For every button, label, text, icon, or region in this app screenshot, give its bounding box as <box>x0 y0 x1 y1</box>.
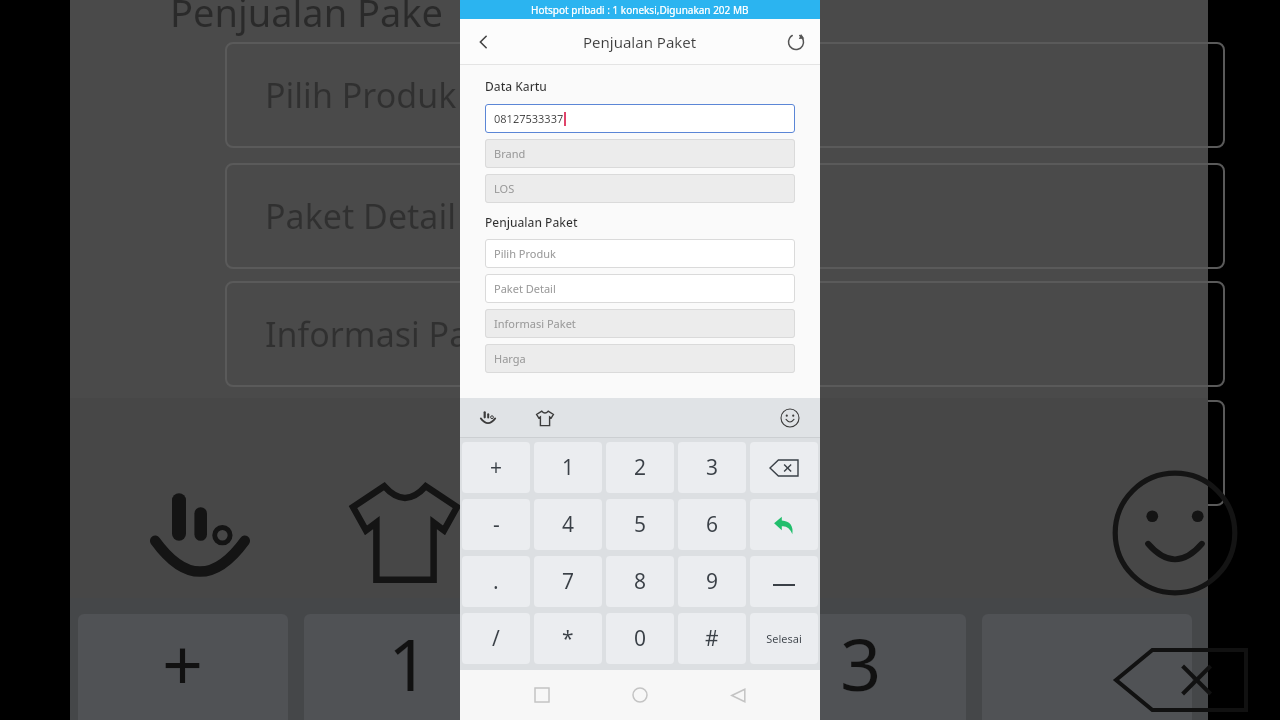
staticText: Informasi Paket <box>494 316 576 331</box>
staticText: 4 <box>562 510 575 539</box>
staticText: 0 <box>634 624 647 653</box>
staticText: 3 <box>840 614 882 712</box>
staticText: 9 <box>706 567 719 596</box>
staticText: . <box>493 567 499 596</box>
button[interactable]: * <box>534 613 602 664</box>
staticText: Brand <box>494 146 526 161</box>
button[interactable]: 8 <box>606 556 674 607</box>
staticText: 08127533337 <box>494 111 564 126</box>
button[interactable]: 3 <box>678 442 746 493</box>
staticText: Informasi Paket <box>265 311 518 357</box>
button[interactable]: LOS <box>485 174 795 203</box>
button[interactable]: Brand <box>485 139 795 168</box>
button[interactable]: Emoji <box>770 398 810 438</box>
staticText: * <box>562 624 574 653</box>
button[interactable]: 1 <box>534 442 602 493</box>
staticText: Pilih Produk <box>265 72 457 118</box>
button[interactable]: Keyboard settings <box>468 398 508 438</box>
staticText: / <box>492 624 500 653</box>
button[interactable]: Backspace <box>750 442 818 493</box>
button[interactable]: 5 <box>606 499 674 550</box>
staticText: Harga <box>494 351 526 366</box>
staticText: Data Kartu <box>485 78 547 94</box>
button[interactable]: Harga <box>485 344 795 373</box>
staticText: 2 <box>634 453 647 482</box>
staticText: Paket Detail <box>265 193 456 239</box>
staticText: LOS <box>494 181 515 196</box>
button[interactable]: + <box>462 442 530 493</box>
button[interactable]: 4 <box>534 499 602 550</box>
staticText: Selesai <box>766 631 802 646</box>
staticText: # <box>705 624 719 653</box>
staticText: 2 <box>614 614 656 712</box>
button[interactable]: # <box>678 613 746 664</box>
staticText: Hotspot pribadi : 1 koneksi,Digunakan 20… <box>531 3 749 17</box>
button[interactable]: Selesai <box>750 613 818 664</box>
button[interactable]: Space <box>750 556 818 607</box>
button[interactable]: 9 <box>678 556 746 607</box>
button[interactable]: 08127533337 <box>485 104 795 133</box>
button[interactable]: 2 <box>606 442 674 493</box>
staticText: Penjualan Paket <box>485 214 578 230</box>
button[interactable]: Back <box>460 19 508 64</box>
staticText: Penjualan Pake <box>170 0 444 38</box>
staticText: 3 <box>706 453 719 482</box>
button[interactable]: Pilih Produk <box>485 239 795 268</box>
button[interactable]: - <box>462 499 530 550</box>
button[interactable]: 7 <box>534 556 602 607</box>
button[interactable]: Informasi Paket <box>485 309 795 338</box>
staticText: 7 <box>562 567 575 596</box>
staticText: 1 <box>562 453 575 482</box>
button[interactable]: Back <box>716 673 760 717</box>
staticText: Pilih Produk <box>494 246 556 261</box>
button[interactable]: / <box>462 613 530 664</box>
staticText: 1 <box>388 614 430 712</box>
staticText: 5 <box>634 510 647 539</box>
button[interactable]: Theme <box>525 398 565 438</box>
staticText: 8 <box>634 567 647 596</box>
staticText: - <box>493 510 500 539</box>
button[interactable]: Enter <box>750 499 818 550</box>
button[interactable]: Recents <box>520 673 564 717</box>
staticText: + <box>162 614 204 712</box>
button[interactable]: 0 <box>606 613 674 664</box>
staticText: Paket Detail <box>494 281 556 296</box>
button[interactable]: 6 <box>678 499 746 550</box>
button[interactable]: Refresh <box>772 19 820 64</box>
button[interactable]: . <box>462 556 530 607</box>
staticText: + <box>490 453 503 482</box>
staticText: 6 <box>706 510 719 539</box>
staticText: Penjualan Paket <box>583 32 697 52</box>
button[interactable]: Paket Detail <box>485 274 795 303</box>
button[interactable]: Home <box>618 673 662 717</box>
